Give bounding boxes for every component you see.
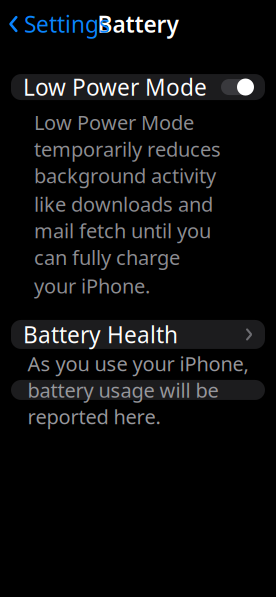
staticText: Low Power Mode temporarily reduces backg… — [34, 109, 221, 189]
button[interactable]: Low Power Mode — [11, 74, 265, 100]
button[interactable]: Settings — [0, 3, 116, 45]
staticText: Battery Health — [23, 319, 178, 349]
staticText: like downloads and mail fetch until you … — [34, 191, 213, 270]
staticText: your iPhone. — [34, 272, 150, 299]
staticText: As you use your iPhone, battery usage wi… — [27, 350, 248, 430]
staticText: Battery — [97, 9, 178, 39]
staticText: Low Power Mode — [23, 72, 207, 102]
staticText: Settings — [24, 9, 110, 39]
button[interactable]: Battery Health — [11, 320, 265, 349]
